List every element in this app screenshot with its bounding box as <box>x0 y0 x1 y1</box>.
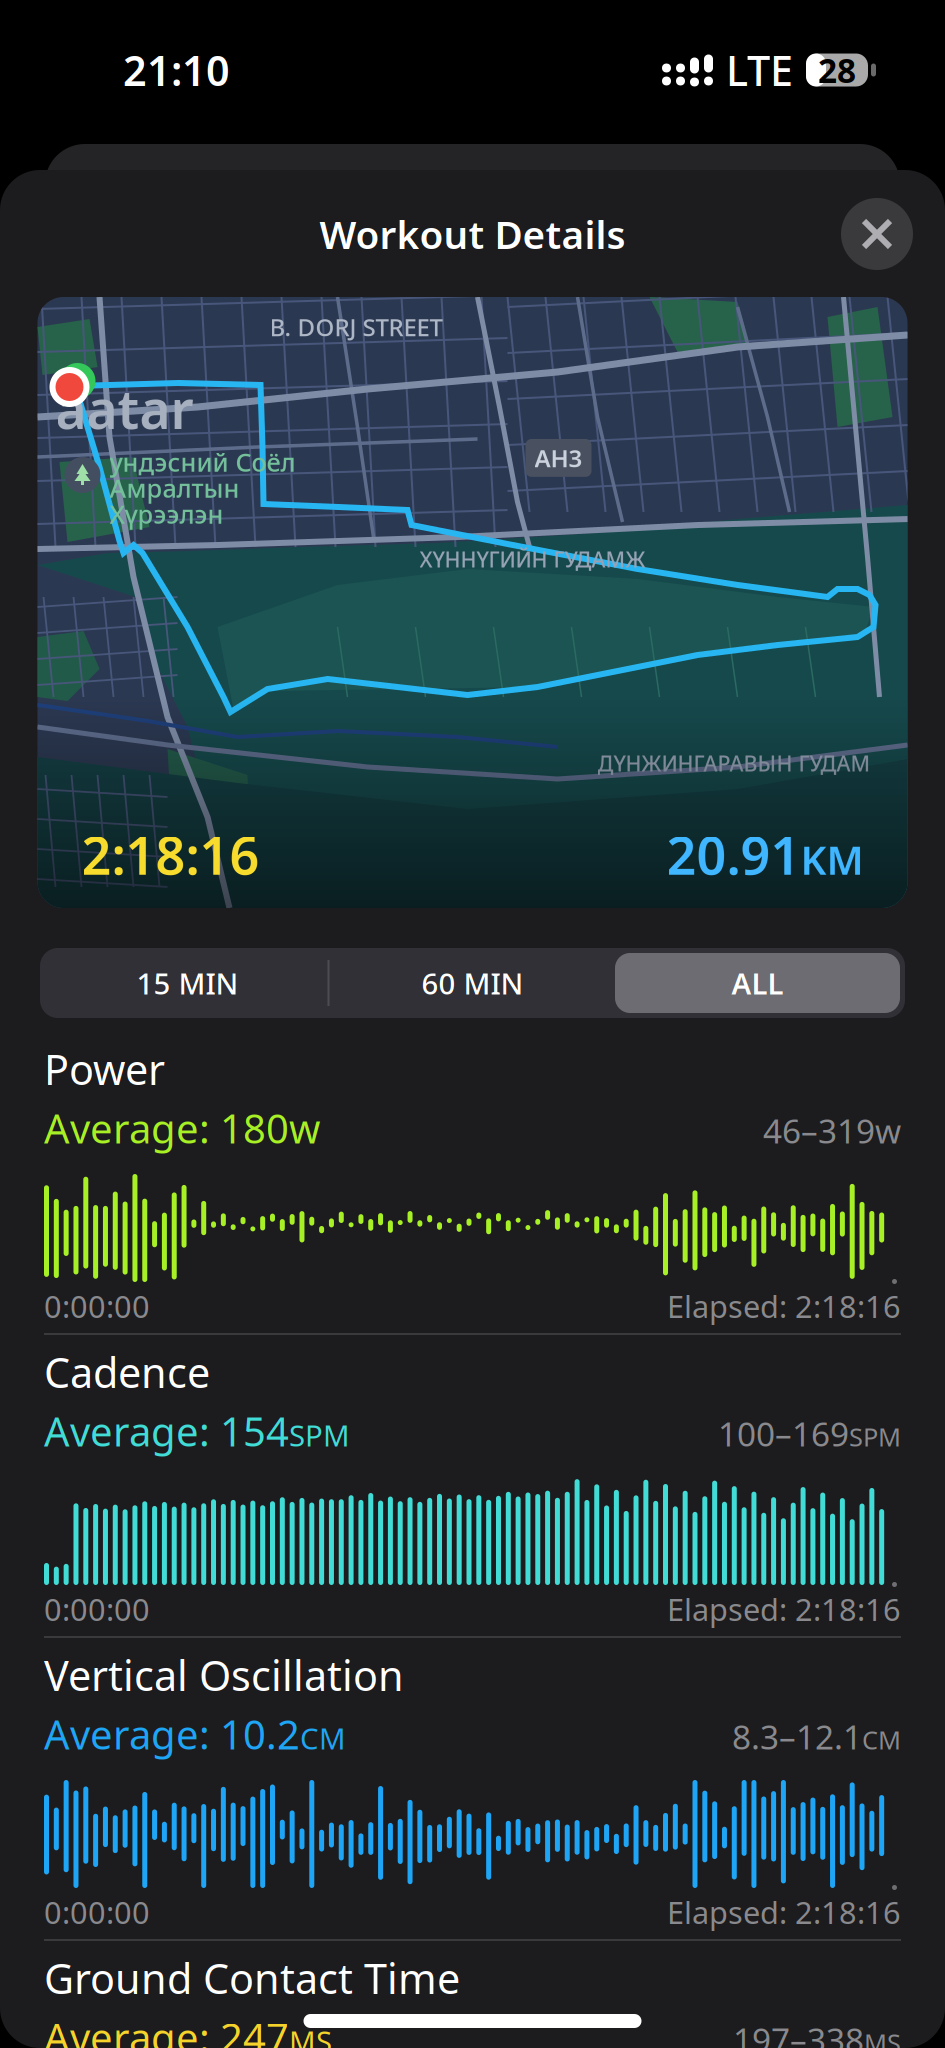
staticText: Ground Contact Time <box>44 1951 460 2005</box>
staticText: ХҮННҮГИЙН ГУДАМЖ <box>419 545 645 573</box>
staticText: KM <box>800 833 863 886</box>
staticText: Power <box>44 1042 165 1096</box>
staticText: Average: 10.2 <box>44 1707 300 1760</box>
staticText: Vertical Oscillation <box>44 1648 404 1702</box>
staticText: 0:00:00 <box>44 1589 150 1629</box>
button[interactable]: ALL <box>615 953 900 1013</box>
staticText: 8.3–12.1 <box>732 1714 862 1759</box>
staticText: B. DORJ STREET <box>269 311 442 343</box>
staticText: 15 MIN <box>136 963 238 1002</box>
staticText: 60 MIN <box>421 963 523 1002</box>
staticText: SPM <box>849 1420 901 1453</box>
staticText: 46–319 <box>763 1108 875 1153</box>
button[interactable]: Close <box>841 198 913 270</box>
staticText: w <box>875 1108 901 1153</box>
staticText: SPM <box>289 1416 350 1455</box>
staticText: CM <box>300 1719 346 1758</box>
staticText: 197–338 <box>733 2017 864 2048</box>
staticText: 2:18:16 <box>81 820 259 889</box>
staticText: Elapsed: 2:18:16 <box>667 1286 901 1326</box>
staticText: 21:10 <box>123 43 230 97</box>
staticText: aatar <box>55 373 193 444</box>
staticText: Elapsed: 2:18:16 <box>667 1589 901 1629</box>
staticText: 20.91 <box>666 820 800 889</box>
staticText: MS <box>864 2026 901 2048</box>
staticText: ундэсний Соёл <box>109 445 295 479</box>
staticText: Cadence <box>44 1345 210 1399</box>
staticText: 0:00:00 <box>44 1286 150 1326</box>
staticText: Average: 180 <box>44 1101 289 1154</box>
staticText: ALL <box>731 963 783 1002</box>
button[interactable]: 60 MIN <box>330 953 615 1013</box>
staticText: Average: 247 <box>44 2010 289 2048</box>
staticText: АН3 <box>534 442 582 474</box>
staticText: 28 <box>818 48 856 92</box>
staticText: MS <box>289 2022 332 2048</box>
staticText: Хүрээлэн <box>109 497 223 531</box>
staticText: 0:00:00 <box>44 1892 150 1932</box>
button[interactable]: 15 MIN <box>45 953 330 1013</box>
staticText: ДҮНЖИНГАРАВЫН ГУДАМ <box>597 749 870 777</box>
staticText: CM <box>862 1723 901 1756</box>
staticText: w <box>289 1101 320 1154</box>
staticText: Workout Details <box>319 208 625 260</box>
button[interactable]: Route map, 2:18:16, 20.91 kilometres <box>37 297 907 908</box>
staticText: Амралтын <box>109 471 239 505</box>
staticText: Average: 154 <box>44 1404 289 1457</box>
staticText: Elapsed: 2:18:16 <box>667 1892 901 1932</box>
staticText: 100–169 <box>718 1411 849 1456</box>
staticText: LTE <box>726 43 793 97</box>
